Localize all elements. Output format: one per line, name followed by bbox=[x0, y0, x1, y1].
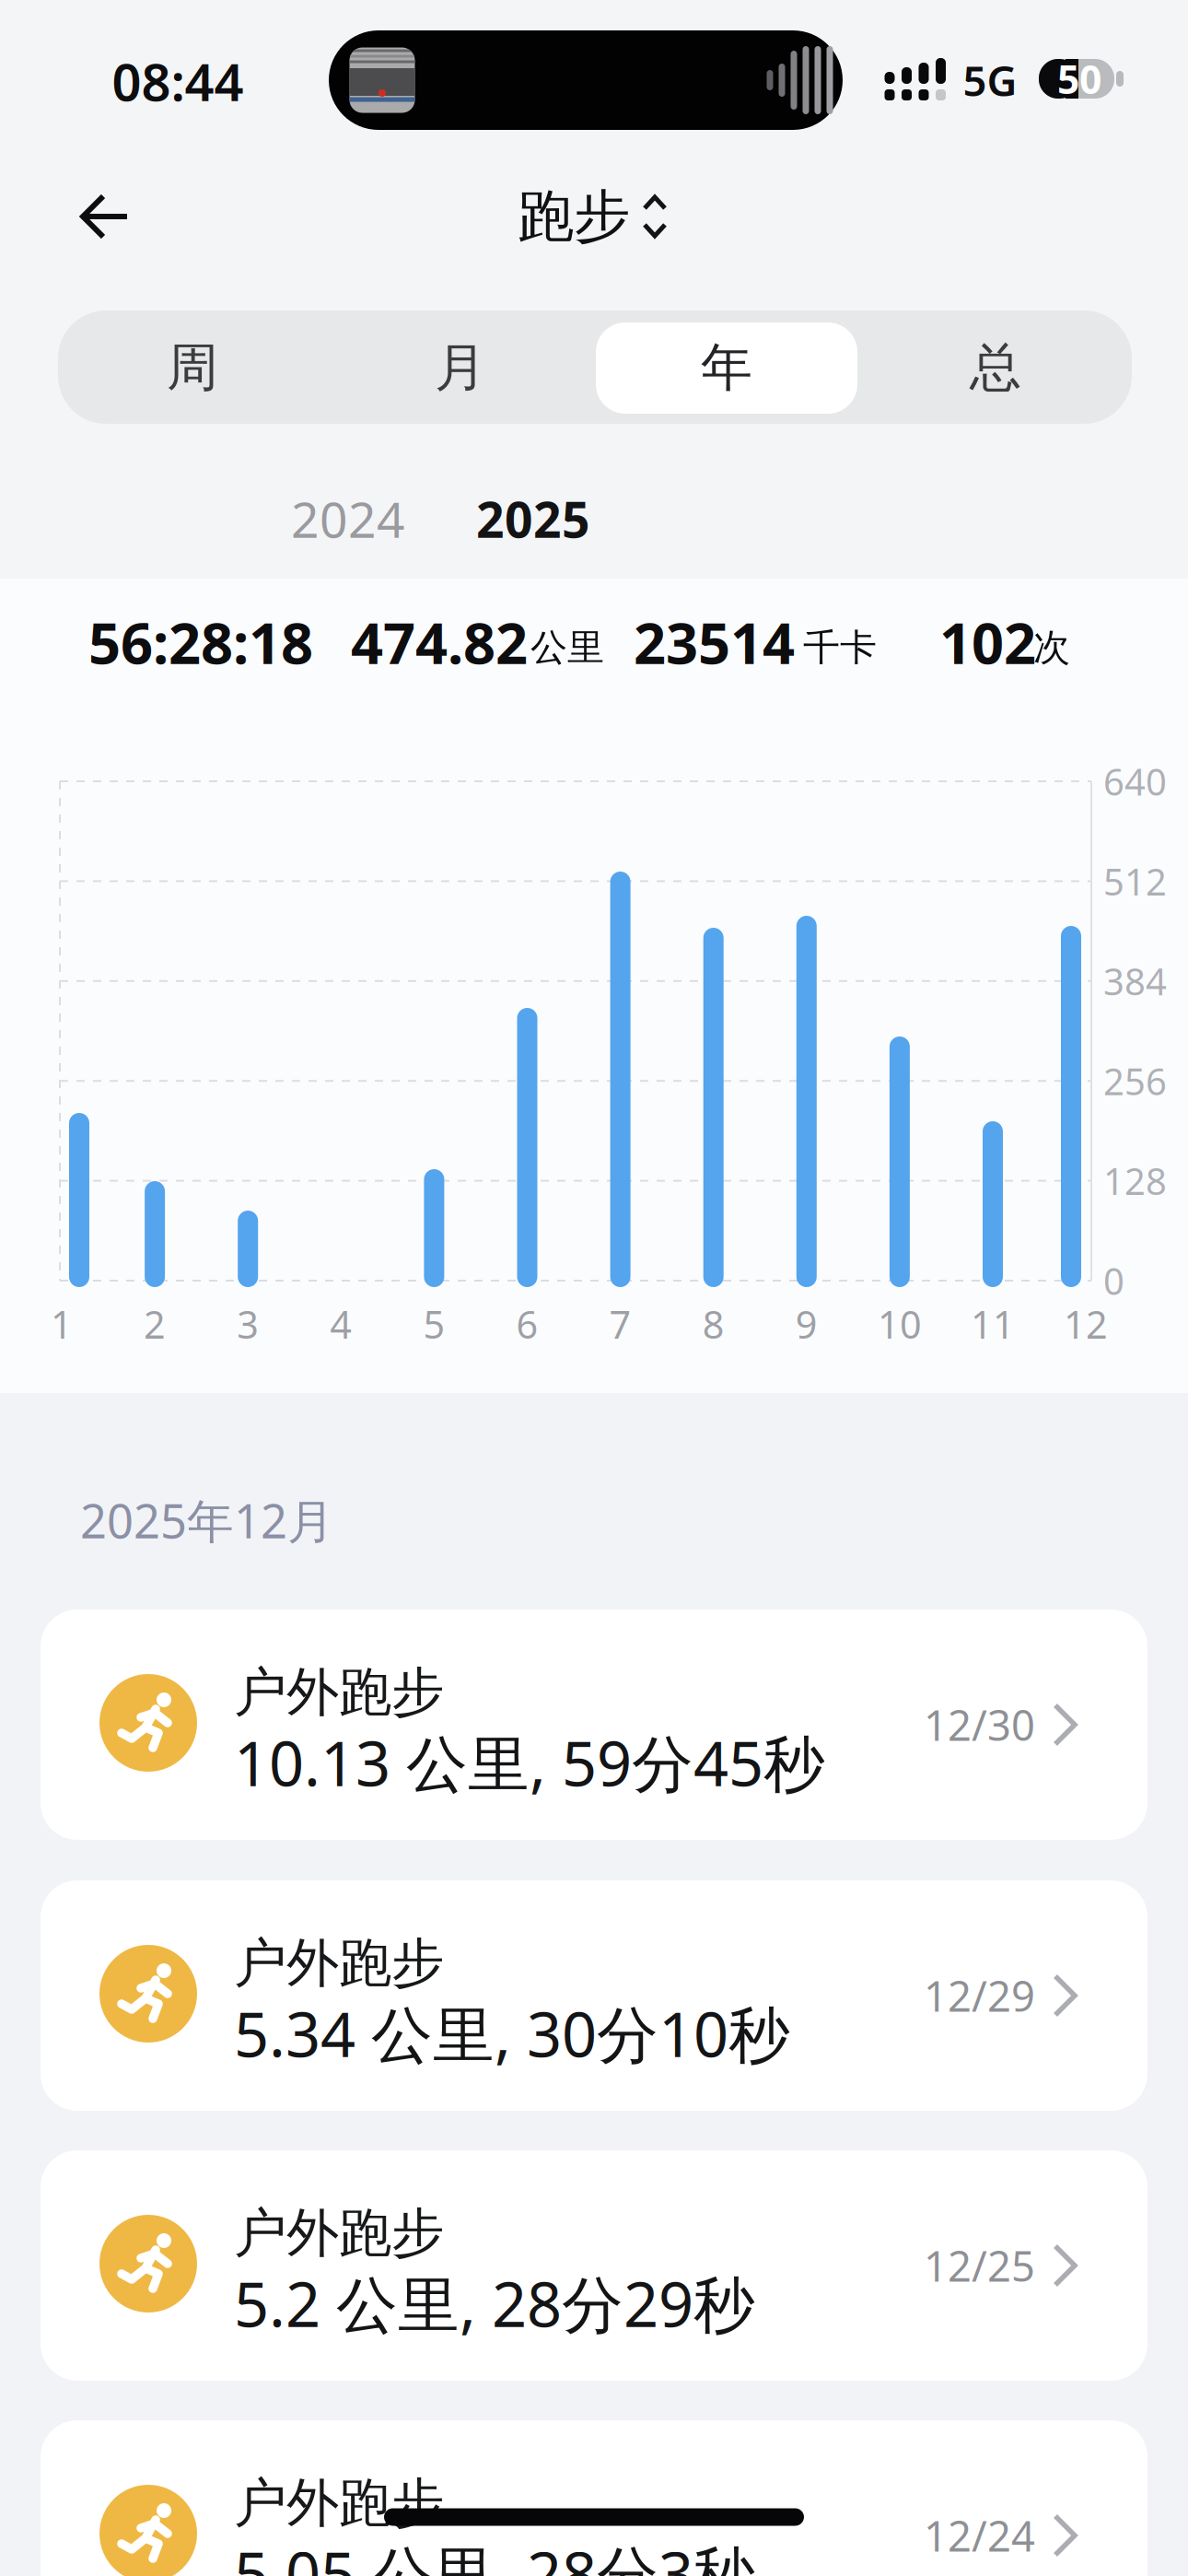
staticText: 5.34 公里, 30分10秒 bbox=[234, 1993, 790, 2074]
staticText: 474.82 bbox=[351, 605, 528, 680]
staticText: 2024 bbox=[291, 486, 405, 551]
staticText: 4 bbox=[330, 1299, 352, 1349]
staticText: 跑步 bbox=[518, 182, 630, 251]
staticText: 总 bbox=[970, 336, 1021, 399]
staticText: 12/24 bbox=[924, 2508, 1035, 2563]
staticText: 5 bbox=[423, 1299, 445, 1349]
staticText: 户外跑步 bbox=[234, 2471, 444, 2536]
staticText: 2025年12月 bbox=[80, 1489, 334, 1551]
staticText: 12/25 bbox=[924, 2238, 1035, 2293]
staticText: 12/29 bbox=[924, 1968, 1035, 2023]
staticText: 9 bbox=[795, 1299, 818, 1349]
staticText: 1 bbox=[51, 1299, 73, 1349]
staticText: 12 bbox=[1064, 1299, 1108, 1349]
staticText: 5.2 公里, 28分29秒 bbox=[234, 2262, 755, 2344]
staticText: 56:28:18 bbox=[88, 605, 313, 680]
staticText: 102 bbox=[939, 605, 1036, 680]
button[interactable]: 月 bbox=[329, 311, 592, 424]
staticText: 5G bbox=[963, 52, 1017, 108]
staticText: 8 bbox=[702, 1299, 724, 1349]
staticText: 512 bbox=[1103, 857, 1167, 906]
staticText: 256 bbox=[1103, 1056, 1167, 1105]
staticText: 640 bbox=[1103, 757, 1167, 806]
staticText: 10.13 公里, 59分45秒 bbox=[234, 1722, 825, 1803]
button[interactable]: 年 bbox=[595, 311, 858, 424]
staticText: 2 bbox=[144, 1299, 166, 1349]
staticText: 384 bbox=[1103, 957, 1167, 1005]
button[interactable]: 户外跑步 bbox=[41, 1610, 1147, 1840]
button[interactable]: 2024 bbox=[274, 486, 422, 551]
staticText: 周 bbox=[167, 336, 218, 399]
staticText: 10 bbox=[878, 1299, 922, 1349]
button[interactable]: 总 bbox=[864, 311, 1127, 424]
staticText: 6 bbox=[516, 1299, 538, 1349]
staticText: 11 bbox=[971, 1299, 1015, 1349]
staticText: 08:44 bbox=[112, 47, 244, 115]
button[interactable]: 户外跑步 bbox=[41, 2420, 1147, 2576]
staticText: 12/30 bbox=[924, 1697, 1035, 1752]
staticText: 千卡 bbox=[803, 625, 877, 670]
button[interactable]: 2025 bbox=[460, 486, 607, 551]
staticText: 月 bbox=[435, 336, 486, 399]
staticText: 3 bbox=[237, 1299, 259, 1349]
staticText: 23514 bbox=[634, 605, 795, 680]
staticText: 公里 bbox=[530, 625, 604, 670]
staticText: 户外跑步 bbox=[234, 2201, 444, 2266]
staticText: 0 bbox=[1103, 1256, 1124, 1305]
staticText: 户外跑步 bbox=[234, 1660, 444, 1725]
staticText: 7 bbox=[609, 1299, 631, 1349]
staticText: 2025 bbox=[476, 486, 590, 551]
staticText: 年 bbox=[701, 336, 752, 399]
staticText: 5.05 公里, 28分3秒 bbox=[234, 2532, 755, 2576]
staticText: 50 bbox=[1057, 53, 1101, 105]
button[interactable]: 户外跑步 bbox=[41, 2150, 1147, 2381]
staticText: 128 bbox=[1103, 1156, 1167, 1205]
button[interactable]: 周 bbox=[61, 311, 324, 424]
button[interactable]: 户外跑步 bbox=[41, 1880, 1147, 2111]
button[interactable]: Back bbox=[59, 186, 151, 247]
staticText: 户外跑步 bbox=[234, 1931, 444, 1996]
button[interactable]: 跑步 bbox=[506, 174, 681, 259]
staticText: 次 bbox=[1033, 625, 1070, 670]
